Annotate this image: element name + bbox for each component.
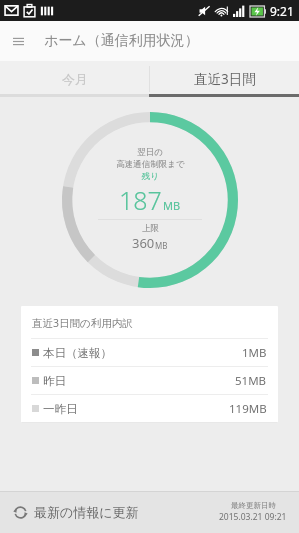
staticText: 360 [132,234,155,252]
staticText: 翌日の [137,147,163,158]
staticText: 一昨日 [43,402,78,416]
button[interactable]: 本日（速報） [21,339,278,366]
staticText: 本日（速報） [43,346,112,360]
staticText: 187 [119,183,162,217]
button[interactable]: 一昨日 [21,395,278,422]
button[interactable]: 直近3日間 [150,61,299,97]
staticText: 昨日 [43,374,66,388]
staticText: 9:21 [270,3,294,19]
staticText: 残り [141,171,159,182]
button[interactable]: 今月 [0,61,149,97]
button[interactable]: Open navigation menu [0,23,36,59]
button[interactable]: 最新の情報に更新 [0,491,299,533]
staticText: 最新の情報に更新 [34,504,139,520]
button[interactable]: 昨日 [21,367,278,394]
staticText: 高速通信制限まで [116,159,185,170]
staticText: 51MB [235,373,267,389]
staticText: MB [163,198,181,213]
staticText: MB [155,240,168,251]
staticText: ホーム（通信利用状況） [44,32,199,50]
staticText: 今月 [62,71,88,87]
staticText: 1MB [242,345,267,361]
staticText: 上限 [142,223,159,234]
staticText: 最終更新日時 [231,501,276,510]
staticText: 2015.03.21 09:21 [219,511,287,523]
staticText: 119MB [229,401,267,417]
staticText: 直近3日間の利用内訳 [32,316,133,330]
staticText: 直近3日間 [194,70,256,88]
